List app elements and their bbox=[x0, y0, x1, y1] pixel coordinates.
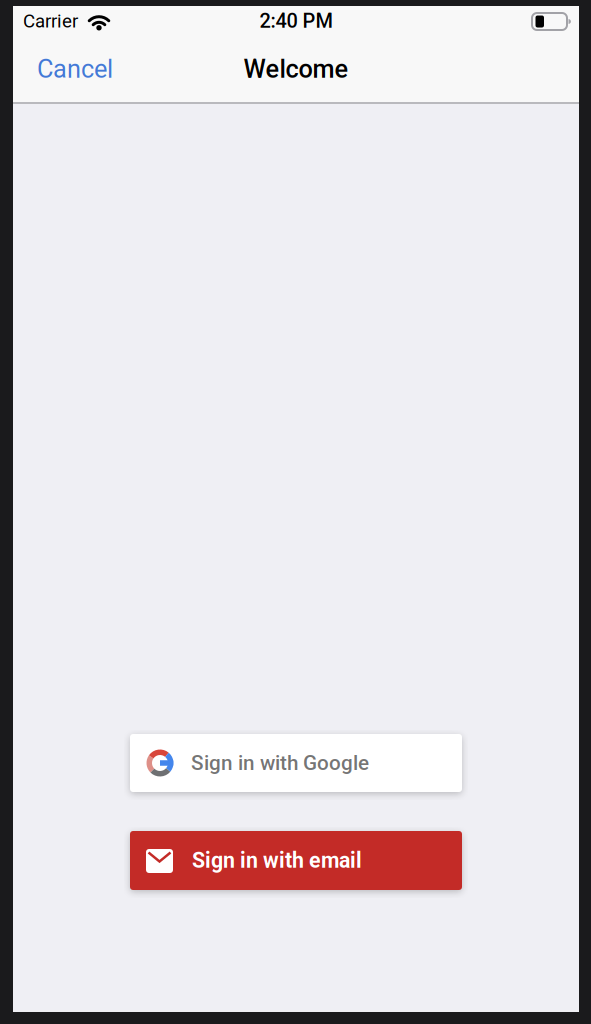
staticText: Cancel bbox=[37, 54, 113, 84]
staticText: Carrier bbox=[23, 10, 78, 32]
staticText: Sign in with Google bbox=[191, 751, 369, 775]
button[interactable]: Sign in with Google bbox=[130, 734, 462, 792]
staticText: Sign in with email bbox=[192, 848, 362, 873]
button[interactable]: Cancel bbox=[37, 36, 113, 102]
staticText: 2:40 PM bbox=[259, 9, 332, 33]
staticText: Welcome bbox=[243, 54, 348, 84]
button[interactable]: Sign in with email bbox=[130, 831, 462, 890]
